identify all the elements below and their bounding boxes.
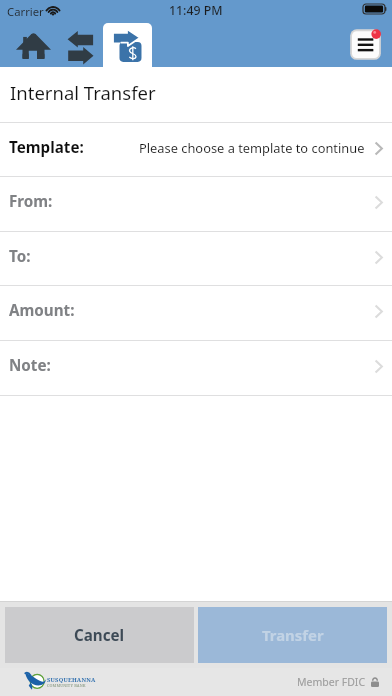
button[interactable]: Menu bbox=[347, 26, 384, 63]
staticText: Transfer bbox=[262, 625, 324, 645]
button[interactable]: Cancel bbox=[5, 607, 194, 663]
staticText: Template: bbox=[9, 137, 84, 158]
staticText: Member FDIC bbox=[297, 675, 366, 689]
button[interactable]: Amount: bbox=[0, 285, 392, 340]
staticText: Cancel bbox=[74, 625, 125, 646]
button[interactable]: Transfer bbox=[198, 607, 387, 663]
staticText: 11:49 PM bbox=[169, 2, 223, 19]
staticText: SUSQUEHANNA bbox=[47, 676, 96, 684]
button[interactable]: Transfers bbox=[58, 23, 103, 67]
staticText: Carrier bbox=[7, 4, 44, 19]
button[interactable]: Template: bbox=[0, 122, 392, 177]
button[interactable]: Note: bbox=[0, 340, 392, 395]
staticText: Internal Transfer bbox=[10, 80, 156, 105]
staticText: Please choose a template to continue bbox=[139, 139, 365, 157]
button[interactable]: Internal Transfer tab bbox=[103, 23, 152, 67]
button[interactable]: Home bbox=[10, 23, 57, 67]
button[interactable]: To: bbox=[0, 231, 392, 286]
button[interactable]: From: bbox=[0, 176, 392, 231]
staticText: To: bbox=[9, 246, 31, 267]
staticText: COMMUNITY BANK bbox=[47, 683, 86, 688]
staticText: From: bbox=[9, 191, 53, 212]
staticText: Amount: bbox=[9, 300, 75, 321]
staticText: Note: bbox=[9, 355, 51, 376]
